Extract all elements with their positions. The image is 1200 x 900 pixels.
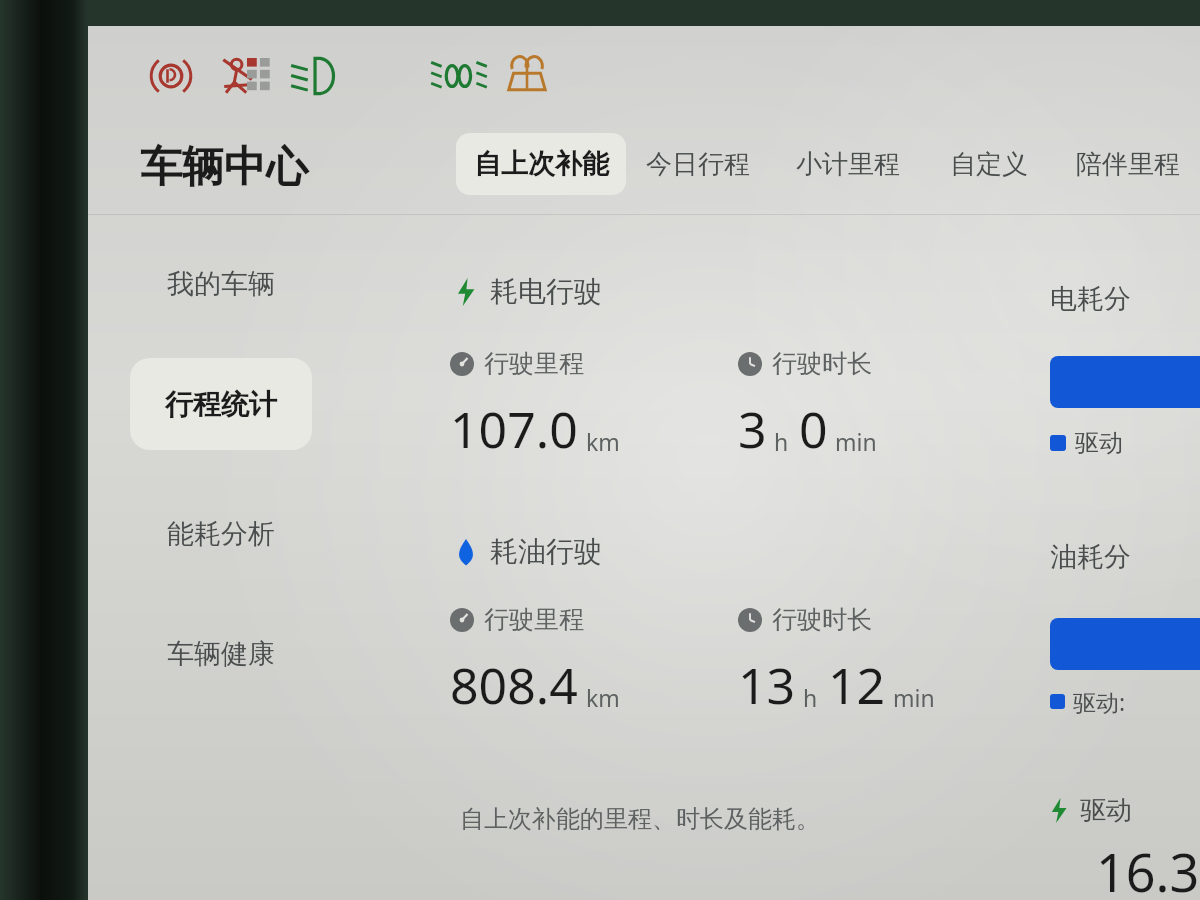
staticText: 自定义 [950,148,1028,181]
staticText: h [803,682,818,713]
button[interactable]: 车辆健康 [130,608,312,700]
button[interactable]: 行程统计 [130,358,312,450]
button[interactable]: 能耗分析 [130,488,312,580]
staticText: 油耗分 [1050,540,1131,574]
staticText: h [774,426,789,457]
button[interactable]: 我的车辆 [130,238,312,330]
staticText: 驱动 [1080,794,1132,827]
staticText: 行程统计 [165,387,277,422]
staticText: 陪伴里程 [1076,148,1180,181]
staticText: 我的车辆 [167,267,275,301]
staticText: km [586,426,620,457]
staticText: 自上次补能的里程、时长及能耗。 [460,804,820,834]
button[interactable]: 今日行程 [628,133,768,195]
staticText: 行驶里程 [484,604,584,635]
staticText: 13 [738,651,796,719]
staticText: 808.4 [450,651,578,719]
staticText: 耗电行驶 [490,274,602,309]
staticText: 3 [738,395,767,463]
staticText: 107.0 [450,395,578,463]
staticText: 自上次补能 [474,147,609,181]
staticText: 车辆健康 [167,637,275,671]
staticText: 小计里程 [796,148,900,181]
staticText: min [835,426,877,457]
staticText: 0 [799,395,828,463]
staticText: min [893,682,935,713]
staticText: 驱动: [1073,686,1126,717]
staticText: 行驶时长 [772,348,872,379]
staticText: 12 [828,651,886,719]
staticText: 今日行程 [646,148,750,181]
staticText: km [586,682,620,713]
staticText: 能耗分析 [167,517,275,551]
staticText: 驱动 [1075,428,1123,458]
staticText: 耗油行驶 [490,534,602,569]
staticText: 电耗分 [1050,282,1131,316]
button[interactable]: 自上次补能 [456,133,626,195]
staticText: 车辆中心 [140,141,308,194]
staticText: 行驶里程 [484,348,584,379]
staticText: 16.3 [1096,836,1200,900]
button[interactable]: 陪伴里程 [1053,133,1200,195]
button[interactable]: 小计里程 [778,133,918,195]
staticText: 行驶时长 [772,604,872,635]
button[interactable]: 自定义 [933,133,1045,195]
